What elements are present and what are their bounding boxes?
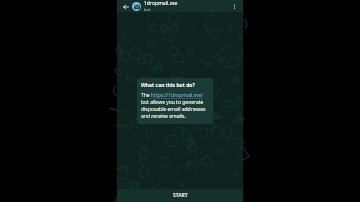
staticText: The https://1dropmail.me/ bot allows you…: [141, 92, 209, 120]
staticText: What can this bot do?: [141, 82, 195, 89]
button[interactable]: START: [117, 189, 243, 202]
button[interactable]: Back: [121, 2, 130, 11]
staticText: bot: [144, 7, 151, 12]
button[interactable]: Bot avatar: [132, 2, 141, 11]
staticText: START: [173, 192, 188, 199]
staticText: 1dropmail.me: [144, 0, 178, 7]
button[interactable]: What can this bot do?: [137, 78, 213, 124]
button[interactable]: 1dropmail.me: [144, 0, 230, 12]
button[interactable]: More options: [230, 2, 239, 11]
